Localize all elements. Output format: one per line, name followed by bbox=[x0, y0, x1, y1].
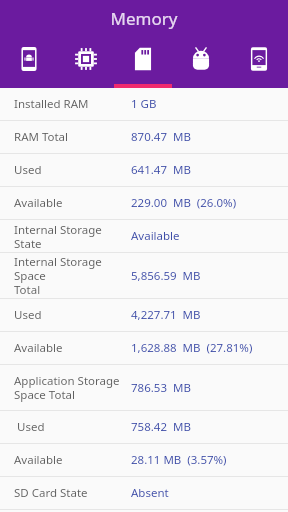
staticText: 1 GB bbox=[131, 96, 157, 112]
button[interactable]: Internal Storage Space Total bbox=[0, 253, 288, 298]
button[interactable]: Internal Storage State bbox=[0, 220, 288, 252]
button[interactable]: Used bbox=[0, 299, 288, 331]
staticText: RAM Total bbox=[14, 129, 131, 145]
staticText: Available bbox=[14, 340, 131, 356]
staticText: 786.53 MB bbox=[131, 380, 191, 396]
button[interactable]: RAM Total bbox=[0, 121, 288, 153]
staticText: Memory bbox=[0, 7, 288, 30]
staticText: Used bbox=[14, 162, 131, 178]
button[interactable]: Device info bbox=[0, 40, 57, 88]
staticText: Available bbox=[14, 452, 131, 468]
staticText: Available bbox=[131, 228, 180, 244]
staticText: 641.47 MB bbox=[131, 162, 191, 178]
staticText: 28.11 MB (3.57%) bbox=[131, 452, 227, 468]
button[interactable]: Used bbox=[0, 154, 288, 186]
button[interactable]: Available bbox=[0, 187, 288, 219]
button[interactable]: Network bbox=[230, 40, 288, 88]
staticText: 870.47 MB bbox=[131, 129, 191, 145]
staticText: 758.42 MB bbox=[131, 419, 191, 435]
button[interactable]: CPU bbox=[57, 40, 114, 88]
staticText: 5,856.59 MB bbox=[131, 268, 201, 284]
button[interactable]: SD Card State bbox=[0, 477, 288, 509]
button[interactable]: Available bbox=[0, 444, 288, 476]
button[interactable]: System bbox=[172, 40, 230, 88]
staticText: Application Storage Space Total bbox=[14, 373, 131, 402]
staticText: 1,628.88 MB (27.81%) bbox=[131, 340, 253, 356]
staticText: Available bbox=[14, 195, 131, 211]
button[interactable]: Used bbox=[0, 411, 288, 443]
button[interactable]: Application Storage Space Total bbox=[0, 365, 288, 410]
staticText: Used bbox=[14, 419, 131, 435]
staticText: 229.00 MB (26.0%) bbox=[131, 195, 237, 211]
staticText: Absent bbox=[131, 485, 169, 501]
button[interactable]: Available bbox=[0, 332, 288, 364]
staticText: Installed RAM bbox=[14, 96, 131, 112]
staticText: 4,227.71 MB bbox=[131, 307, 201, 323]
staticText: Internal Storage Space Total bbox=[14, 254, 131, 297]
staticText: SD Card State bbox=[14, 485, 131, 501]
button[interactable]: Installed RAM bbox=[0, 88, 288, 120]
staticText: Internal Storage State bbox=[14, 222, 131, 251]
button[interactable]: Memory bbox=[114, 40, 172, 88]
staticText: Used bbox=[14, 307, 131, 323]
